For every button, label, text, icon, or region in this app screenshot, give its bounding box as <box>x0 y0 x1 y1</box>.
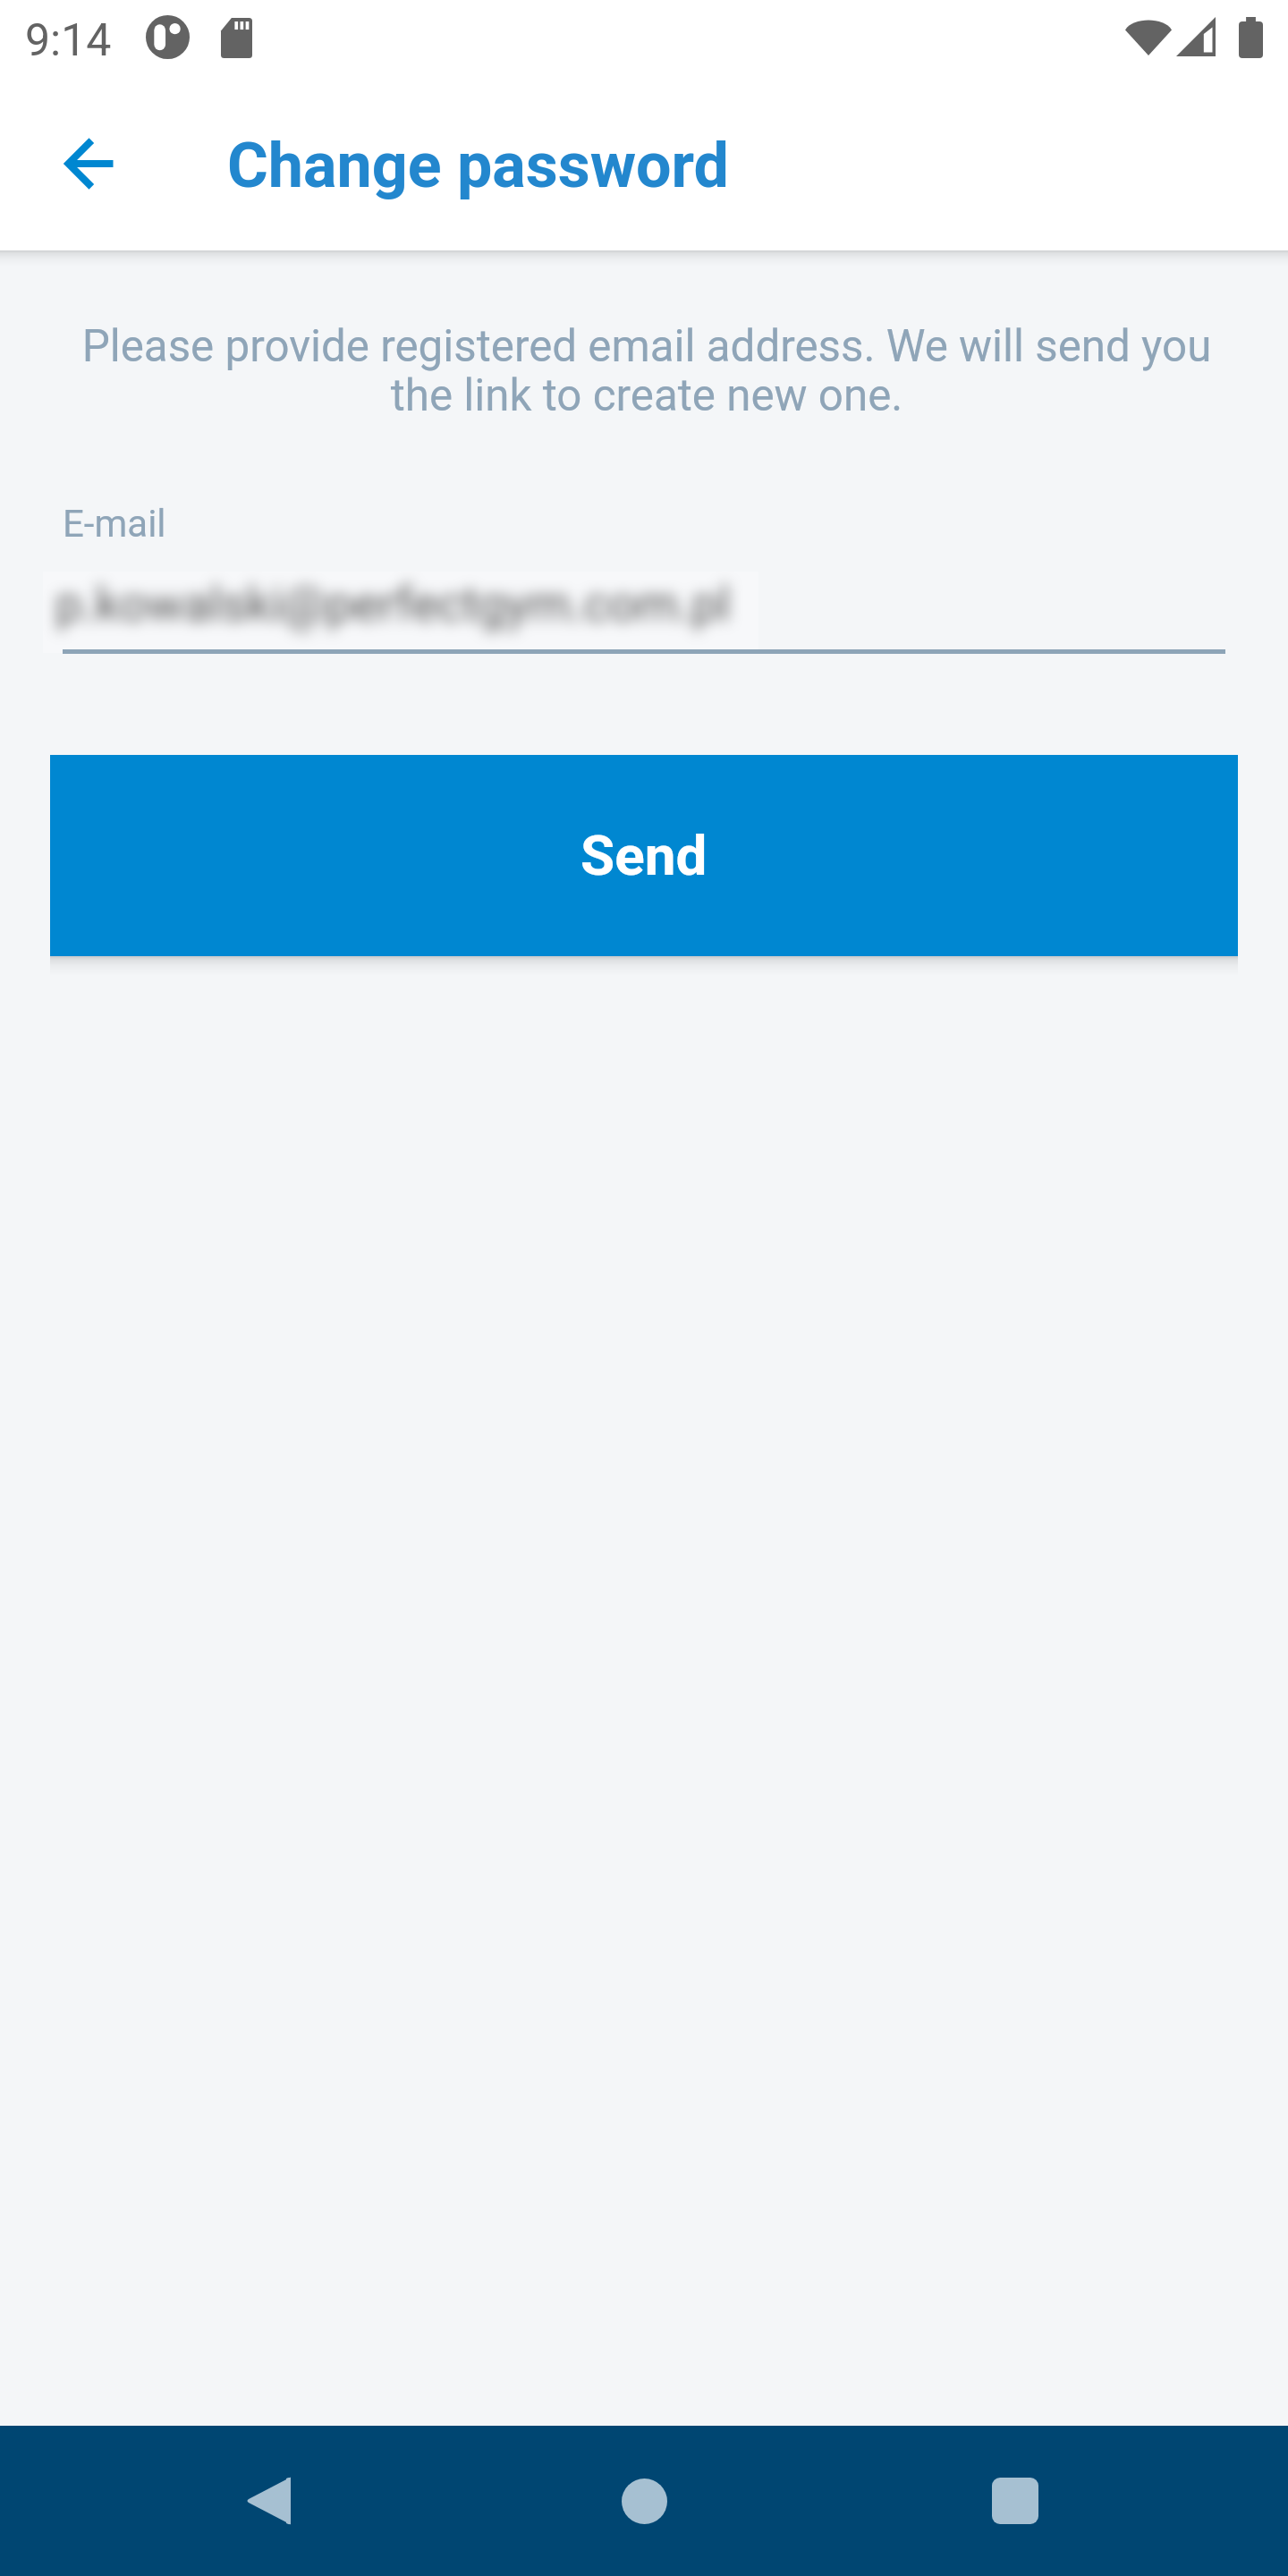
button[interactable]: Recent apps <box>962 2447 1069 2555</box>
button[interactable]: Navigate up <box>13 89 163 239</box>
staticText: 9:14 <box>25 14 112 67</box>
staticText: Change password <box>227 129 729 202</box>
button[interactable]: E-mail input field <box>63 555 1225 654</box>
staticText: p.kowalski@perfectgym.com.pl <box>55 576 731 632</box>
staticText: E-mail <box>63 502 166 546</box>
button[interactable]: Home <box>590 2447 698 2555</box>
button[interactable]: Send <box>50 755 1238 956</box>
button[interactable]: Back <box>215 2447 322 2555</box>
staticText: Send <box>580 823 708 888</box>
staticText: Please provide registered email address.… <box>74 320 1219 421</box>
